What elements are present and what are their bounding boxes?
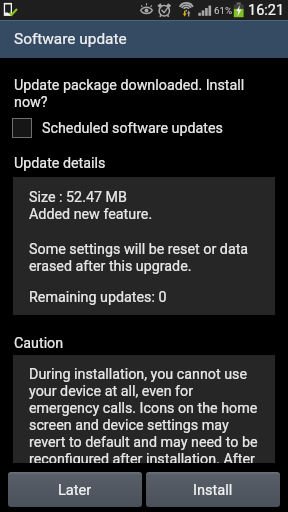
staticText: Added new feature. bbox=[29, 206, 153, 223]
staticText: Size : 52.47 MB bbox=[29, 189, 127, 206]
staticText: Software update bbox=[14, 30, 127, 48]
staticText: Install bbox=[193, 481, 233, 498]
staticText: Later bbox=[58, 481, 92, 498]
button[interactable]: Scheduled software updates checkbox, unc… bbox=[0, 118, 288, 138]
staticText: Scheduled software updates bbox=[42, 120, 223, 137]
staticText: Update details bbox=[14, 155, 106, 172]
button[interactable]: Later bbox=[8, 472, 142, 507]
staticText: Remaining updates: 0 bbox=[29, 289, 167, 306]
staticText: Some settings will be reset or data eras… bbox=[29, 241, 259, 275]
other: Scheduled software updates checkbox, unc… bbox=[12, 118, 32, 138]
staticText: Update package downloaded. Install now? bbox=[14, 77, 255, 111]
staticText: Caution bbox=[14, 335, 64, 352]
staticText: 16:21 bbox=[248, 2, 285, 19]
staticText: During installation, you cannot use your… bbox=[29, 366, 259, 463]
staticText: 61% bbox=[214, 5, 233, 16]
button[interactable]: Install bbox=[146, 472, 280, 507]
